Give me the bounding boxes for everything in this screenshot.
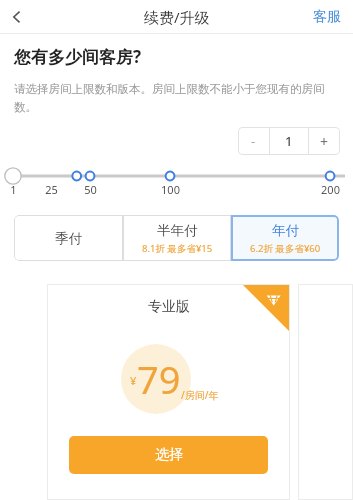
button[interactable]: 客服 xyxy=(301,2,353,32)
staticText: /房间/年 xyxy=(181,388,219,402)
button[interactable]: Room count slider xyxy=(0,169,353,201)
staticText: 请选择房间上限数和版本。房间上限数不能小于您现有的房间数。 xyxy=(14,82,335,115)
staticText: 8.1折 最多省¥15 xyxy=(142,242,213,255)
staticText: 25 xyxy=(45,182,58,197)
staticText: ¥ xyxy=(130,373,137,388)
button[interactable]: 半年付 xyxy=(123,215,231,261)
button[interactable]: 季付 xyxy=(14,215,123,261)
staticText: 续费/升级 xyxy=(144,7,210,27)
staticText: 50 xyxy=(84,182,97,197)
staticText: + xyxy=(320,132,329,151)
staticText: 您有多少间客房? xyxy=(14,45,142,68)
staticText: 200 xyxy=(321,182,340,197)
button[interactable]: 选择 xyxy=(69,436,268,474)
staticText: 100 xyxy=(161,182,180,197)
staticText: 选择 xyxy=(155,446,183,464)
staticText: 季付 xyxy=(55,230,82,247)
staticText: 半年付 xyxy=(157,222,198,239)
staticText: 6.2折 最多省¥60 xyxy=(250,242,321,255)
staticText: 1 xyxy=(10,182,17,197)
staticText: 年付 xyxy=(272,222,299,239)
button[interactable]: Increase xyxy=(309,127,340,155)
button[interactable]: Next plan xyxy=(298,284,353,500)
button[interactable]: 年付 xyxy=(231,215,339,261)
button[interactable]: Back xyxy=(0,0,34,33)
staticText: 专业版 xyxy=(148,298,190,316)
button[interactable]: 专业版 xyxy=(47,284,290,500)
staticText: - xyxy=(251,132,256,150)
staticText: 79 xyxy=(137,353,181,405)
button[interactable]: Decrease xyxy=(238,127,269,155)
staticText: 客服 xyxy=(313,8,341,26)
staticText: 1 xyxy=(285,132,293,150)
